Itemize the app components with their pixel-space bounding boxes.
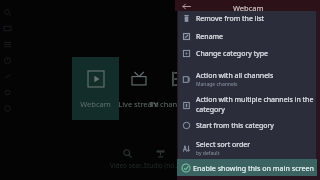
staticText: Enable showing this on main screen: [193, 163, 315, 173]
button[interactable]: Rename: [178, 28, 316, 45]
button[interactable]: [156, 57, 177, 120]
button[interactable]: Action with multiple channels in the: [178, 94, 316, 116]
button[interactable]: Settings: [0, 84, 15, 100]
staticText: Select sort order: [196, 140, 251, 150]
button[interactable]: Studio (no..: [137, 147, 177, 169]
staticText: Webcam: [80, 99, 111, 109]
staticText: by default: [196, 150, 220, 157]
button[interactable]: Favorites: [0, 52, 15, 68]
button[interactable]: Search: [0, 4, 15, 20]
staticText: Manage channels: [196, 81, 238, 88]
button[interactable]: TV channels: [147, 99, 177, 109]
button[interactable]: Live TV: [0, 20, 15, 36]
button[interactable]: Video sear..: [104, 147, 150, 169]
button[interactable]: Start from this category: [178, 117, 316, 134]
staticText: Action with all channels: [196, 71, 274, 81]
staticText: Change category type: [196, 49, 269, 59]
button[interactable]: Categories: [0, 36, 15, 52]
button[interactable]: Action with all channels: [178, 68, 316, 90]
button[interactable]: Remove from the list: [178, 10, 316, 27]
staticText: Action with multiple channels in the: [196, 95, 314, 105]
staticText: Remove from the list: [196, 14, 265, 24]
button[interactable]: Live stream: [115, 57, 162, 120]
staticText: Webcam: [233, 3, 264, 13]
staticText: Video sear..: [110, 161, 144, 169]
button[interactable]: Profile: [0, 100, 15, 116]
staticText: Rename: [196, 32, 224, 42]
button[interactable]: Back: [181, 3, 192, 10]
button[interactable]: Select sort order: [178, 137, 316, 159]
staticText: TV channels: [149, 99, 177, 109]
button[interactable]: Webcam: [72, 57, 119, 120]
button[interactable]: Change category type: [178, 45, 316, 62]
button[interactable]: Enable showing this on main screen: [177, 159, 317, 176]
staticText: Start from this category: [196, 121, 274, 131]
staticText: category: [196, 105, 225, 115]
staticText: Studio (no..: [143, 161, 177, 169]
staticText: Live stream: [118, 99, 159, 109]
